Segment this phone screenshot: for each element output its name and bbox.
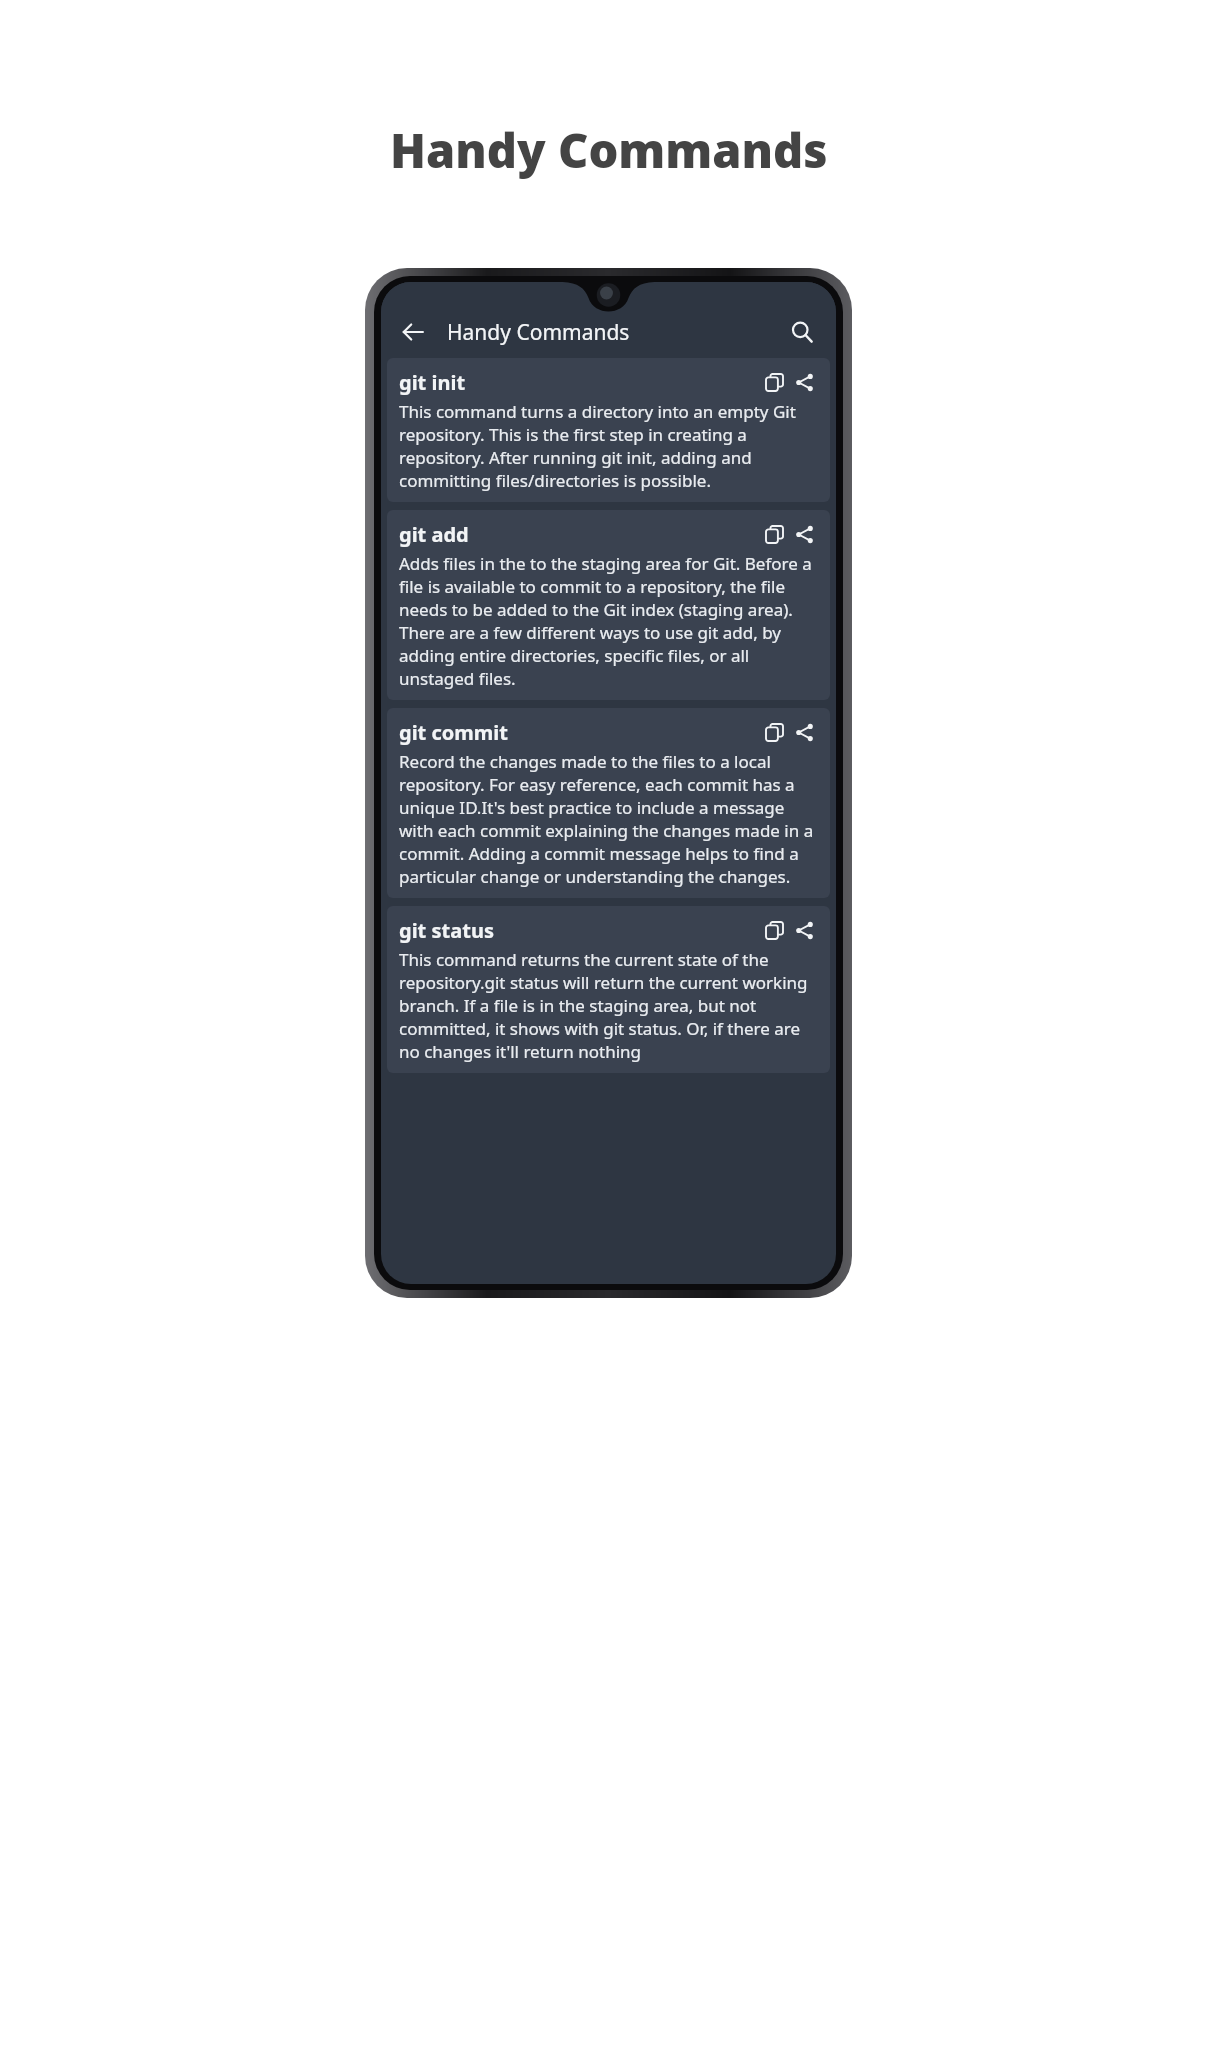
- button[interactable]: Search: [780, 310, 824, 354]
- button[interactable]: Copy: [760, 718, 788, 746]
- button[interactable]: git commit: [387, 708, 830, 898]
- staticText: git init: [399, 369, 466, 396]
- staticText: This command returns the current state o…: [399, 948, 818, 1063]
- button[interactable]: git init: [387, 358, 830, 502]
- staticText: git status: [399, 917, 494, 944]
- staticText: Handy Commands: [447, 318, 630, 347]
- button[interactable]: Copy: [760, 368, 788, 396]
- button[interactable]: Share: [790, 368, 818, 396]
- staticText: Record the changes made to the files to …: [399, 750, 818, 888]
- button[interactable]: Copy: [760, 520, 788, 548]
- staticText: git add: [399, 521, 469, 548]
- button[interactable]: Share: [790, 520, 818, 548]
- staticText: git commit: [399, 719, 508, 746]
- button[interactable]: Share: [790, 916, 818, 944]
- staticText: This command turns a directory into an e…: [399, 400, 818, 492]
- button[interactable]: Copy: [760, 916, 788, 944]
- button[interactable]: Share: [790, 718, 818, 746]
- button[interactable]: git add: [387, 510, 830, 700]
- button[interactable]: Back: [391, 310, 435, 354]
- staticText: Handy Commands: [390, 118, 828, 182]
- staticText: Adds files in the to the staging area fo…: [399, 552, 818, 690]
- button[interactable]: git status: [387, 906, 830, 1073]
